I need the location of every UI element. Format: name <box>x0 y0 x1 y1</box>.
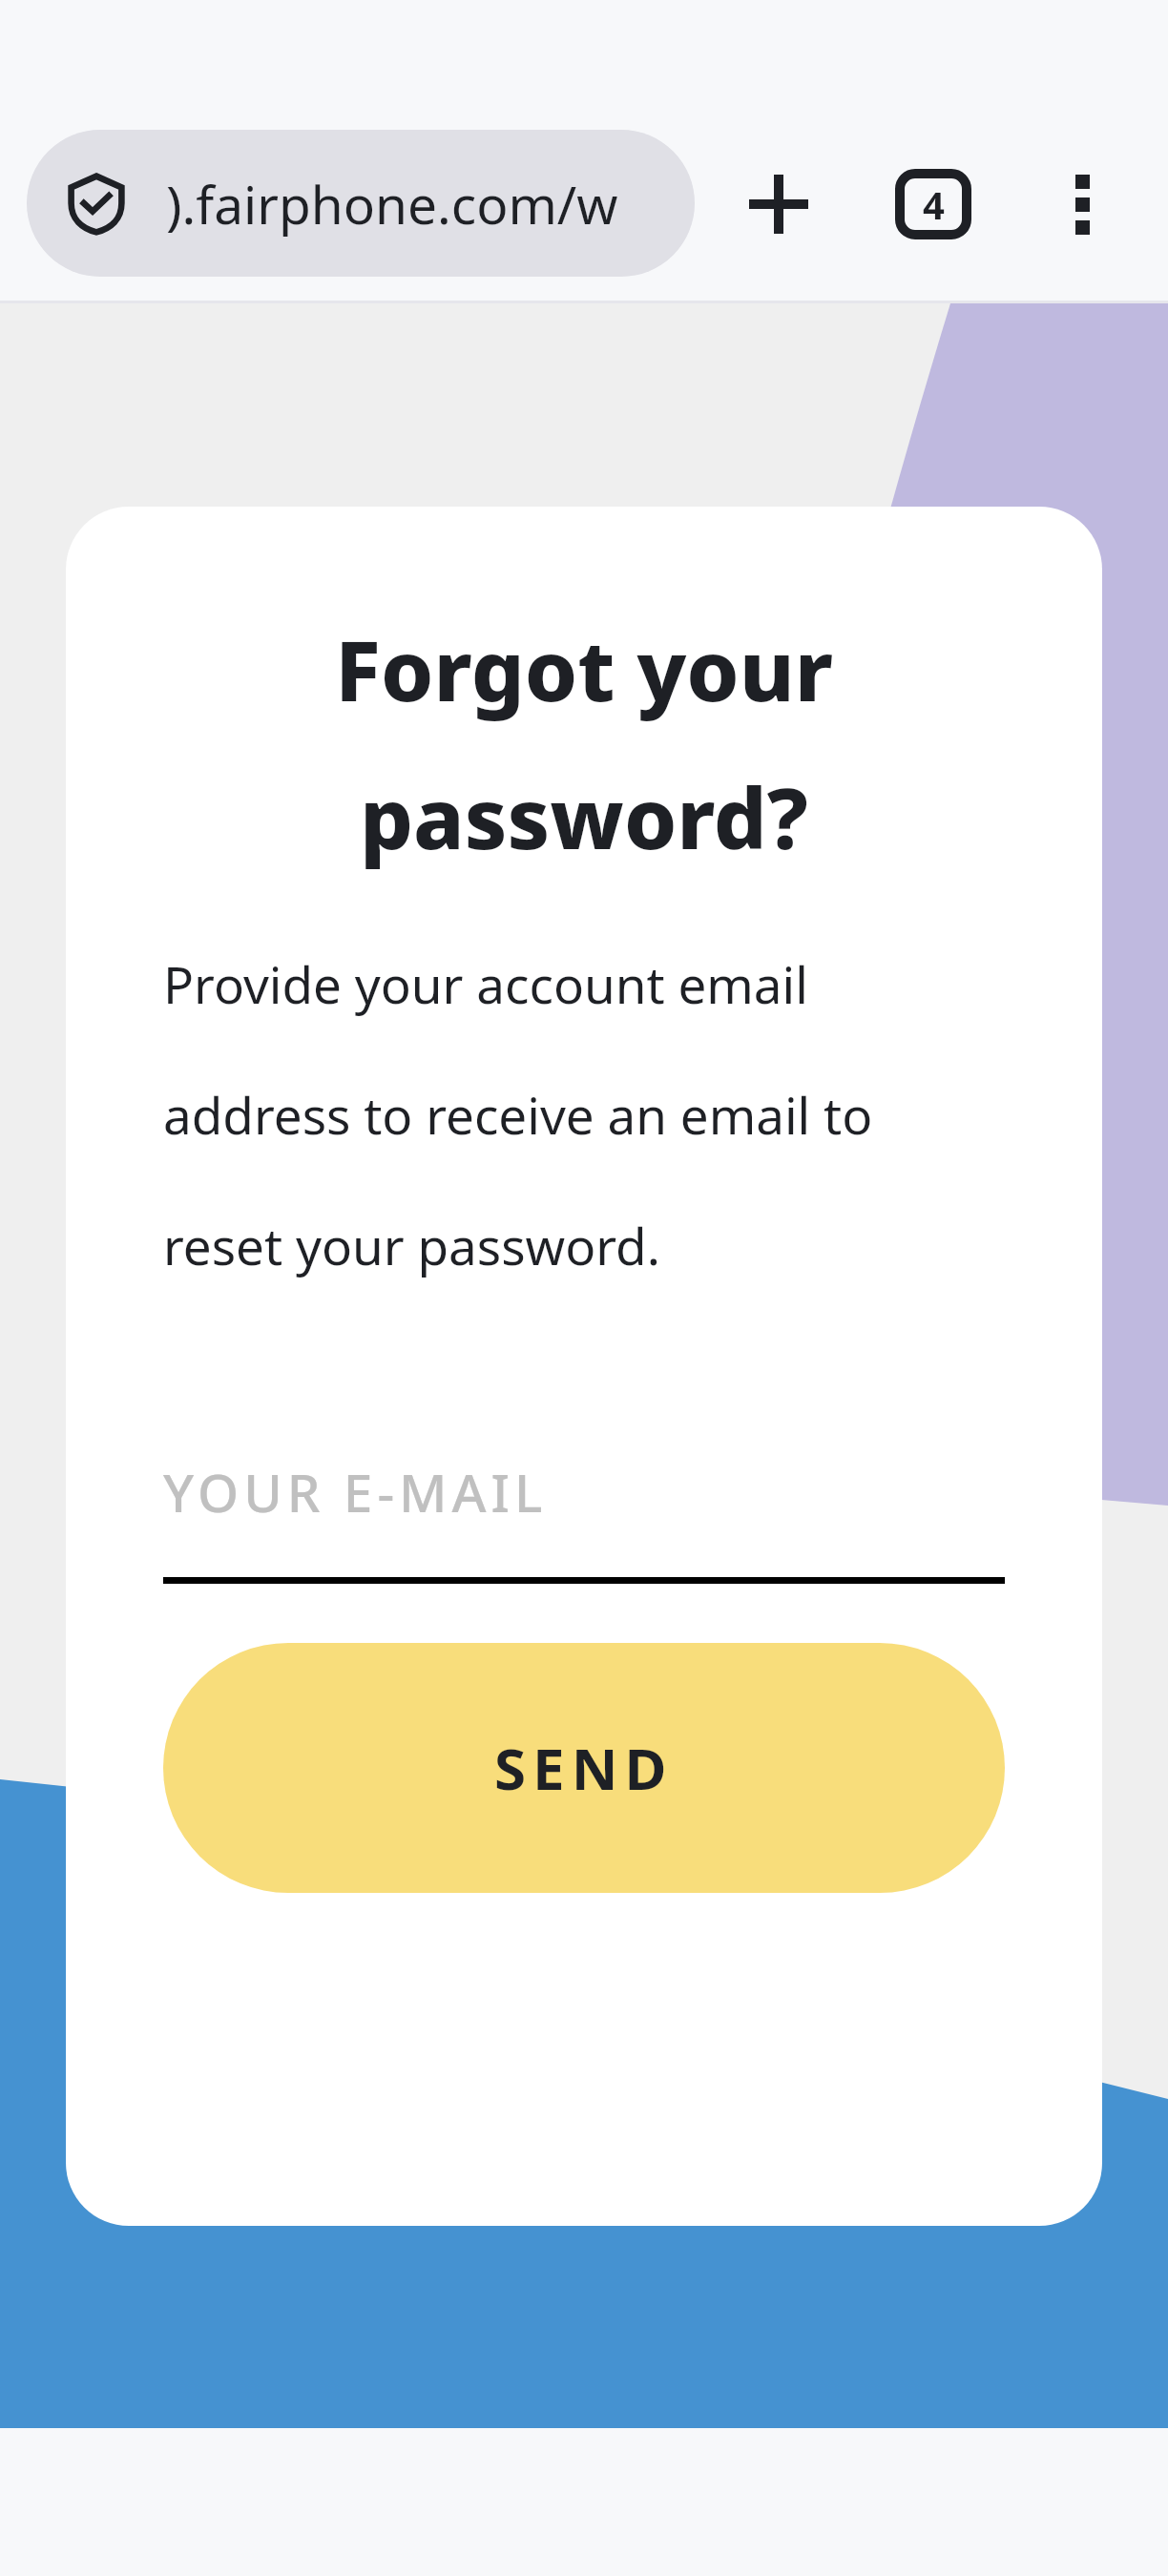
button[interactable]: More options <box>1029 151 1136 258</box>
button[interactable]: Switch tabs, 4 open <box>880 151 987 258</box>
button[interactable]: YOUR E-MAIL <box>163 1456 1005 1584</box>
staticText: Provide your account email address to re… <box>163 949 1005 1279</box>
button[interactable]: New tab <box>725 151 832 258</box>
button[interactable]: SEND <box>163 1643 1005 1893</box>
staticText: ).fairphone.com/w <box>166 168 618 239</box>
staticText: 4 <box>923 178 945 230</box>
staticText: Forgot your password? <box>335 612 833 873</box>
button[interactable]: ).fairphone.com/w <box>27 130 695 277</box>
staticText: SEND <box>494 1729 674 1807</box>
staticText: YOUR E-MAIL <box>163 1456 548 1527</box>
